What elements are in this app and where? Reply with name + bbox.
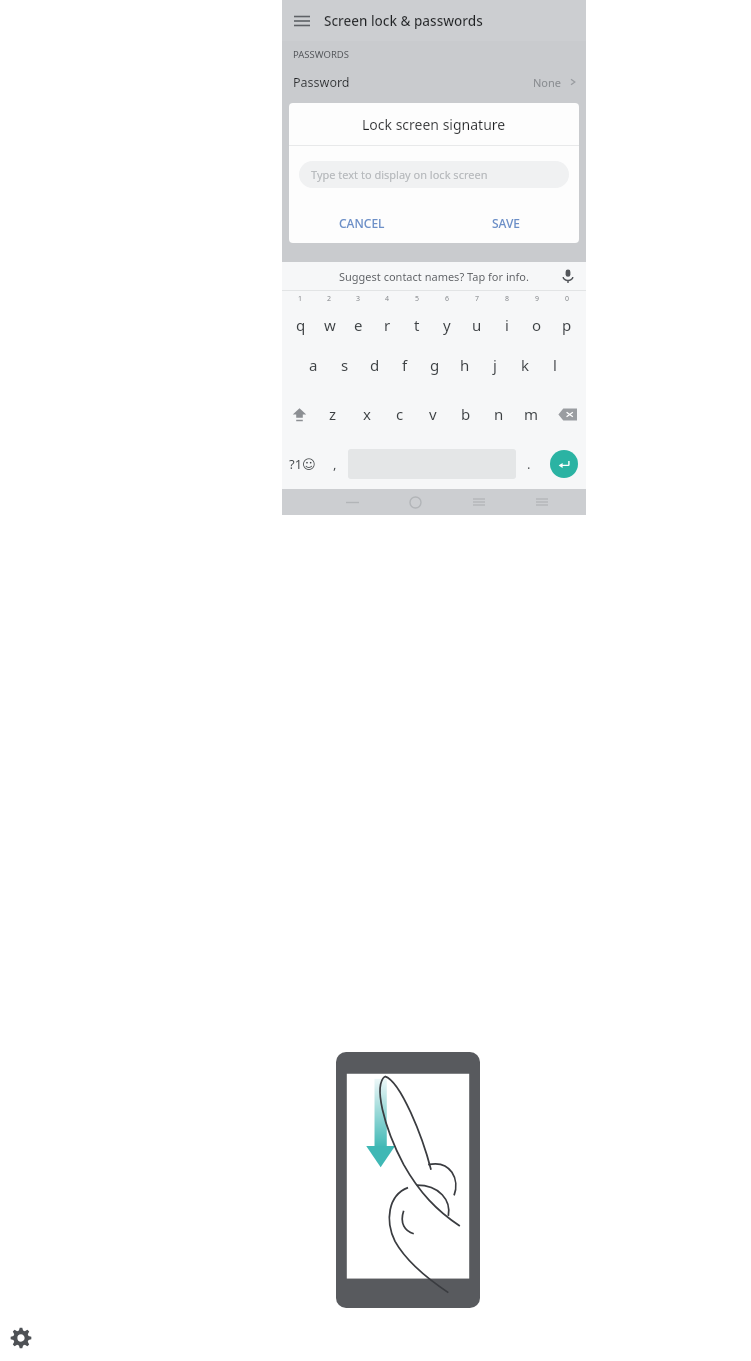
button[interactable]: l	[540, 340, 570, 389]
button[interactable]: g	[420, 340, 450, 389]
button[interactable]: Suggest contact names? Tap for info.	[282, 262, 586, 290]
button[interactable]: Menu	[292, 11, 312, 31]
button[interactable]: b	[449, 389, 482, 439]
button[interactable]: Menu	[282, 0, 586, 41]
staticText: j	[493, 355, 497, 375]
staticText: m	[524, 404, 539, 424]
button[interactable]: Shift	[282, 389, 316, 439]
button[interactable]: Settings	[8, 1325, 34, 1351]
button[interactable]: 1	[286, 291, 315, 340]
staticText: ?1☺	[289, 455, 316, 473]
staticText: CANCEL	[339, 215, 385, 231]
button[interactable]: v	[416, 389, 449, 439]
button[interactable]: Home	[384, 489, 447, 515]
button[interactable]: 4	[373, 291, 402, 340]
staticText: 2	[327, 294, 332, 304]
staticText: r	[384, 315, 391, 335]
button[interactable]: 9	[522, 291, 552, 340]
button[interactable]: d	[360, 340, 390, 389]
staticText: Lock screen signature	[362, 115, 506, 134]
staticText: z	[329, 404, 337, 424]
button[interactable]: Backspace	[548, 389, 586, 439]
button[interactable]: CANCEL	[289, 202, 434, 243]
button[interactable]: a	[298, 340, 329, 389]
staticText: d	[370, 355, 380, 375]
button[interactable]: 6	[432, 291, 462, 340]
button[interactable]: 0	[552, 291, 582, 340]
staticText: p	[562, 315, 572, 335]
staticText: 1	[298, 294, 303, 304]
staticText: 4	[385, 294, 390, 304]
staticText: 6	[445, 294, 450, 304]
button[interactable]: SAVE	[434, 202, 579, 243]
staticText: 8	[505, 294, 510, 304]
button[interactable]: ?1☺	[282, 439, 322, 489]
staticText: Password	[293, 74, 533, 91]
staticText: b	[461, 404, 471, 424]
button[interactable]: x	[350, 389, 383, 439]
staticText: SAVE	[492, 215, 521, 231]
button[interactable]: 7	[462, 291, 492, 340]
button[interactable]: f	[390, 340, 420, 389]
staticText: k	[521, 355, 530, 375]
staticText: 5	[415, 294, 420, 304]
staticText: o	[532, 315, 542, 335]
staticText: x	[363, 404, 371, 424]
staticText: 3	[356, 294, 361, 304]
button[interactable]: ,	[322, 439, 348, 489]
button[interactable]: s	[329, 340, 360, 389]
staticText: ,	[333, 455, 337, 473]
button[interactable]: 8	[492, 291, 522, 340]
staticText: Screen lock & passwords	[324, 12, 483, 30]
staticText: h	[460, 355, 470, 375]
button[interactable]: Menu	[510, 489, 573, 515]
button[interactable]: z	[316, 389, 350, 439]
staticText: 9	[535, 294, 540, 304]
staticText: w	[324, 315, 336, 335]
staticText: v	[429, 404, 437, 424]
button[interactable]: 2	[315, 291, 344, 340]
staticText: Suggest contact names? Tap for info.	[339, 269, 529, 284]
staticText: i	[505, 315, 509, 335]
staticText: g	[430, 355, 440, 375]
staticText: l	[553, 355, 557, 375]
button[interactable]: m	[515, 389, 548, 439]
staticText: 0	[565, 294, 570, 304]
button[interactable]: 5	[402, 291, 432, 340]
staticText: t	[414, 315, 420, 335]
staticText: s	[341, 355, 349, 375]
staticText: a	[309, 355, 318, 375]
staticText: .	[527, 455, 531, 473]
button[interactable]: 3	[344, 291, 373, 340]
staticText: 7	[475, 294, 480, 304]
button[interactable]: Type text to display on lock screen	[299, 161, 569, 188]
staticText: u	[472, 315, 482, 335]
button[interactable]: .	[516, 439, 542, 489]
staticText: y	[443, 315, 451, 335]
staticText: PASSWORDS	[293, 48, 349, 61]
button[interactable]: j	[480, 340, 510, 389]
button[interactable]: k	[510, 340, 540, 389]
staticText: e	[354, 315, 363, 335]
button[interactable]: n	[482, 389, 515, 439]
staticText: q	[296, 315, 306, 335]
button[interactable]: Enter	[550, 450, 578, 478]
button[interactable]: h	[450, 340, 480, 389]
button[interactable]: c	[383, 389, 416, 439]
button[interactable]: Voice input	[560, 268, 576, 284]
button[interactable]: Recents	[447, 489, 510, 515]
staticText: f	[402, 355, 408, 375]
staticText: Type text to display on lock screen	[311, 167, 488, 182]
staticText: n	[494, 404, 504, 424]
staticText: None	[533, 75, 562, 90]
button[interactable]: Password	[282, 67, 586, 97]
staticText: c	[396, 404, 404, 424]
